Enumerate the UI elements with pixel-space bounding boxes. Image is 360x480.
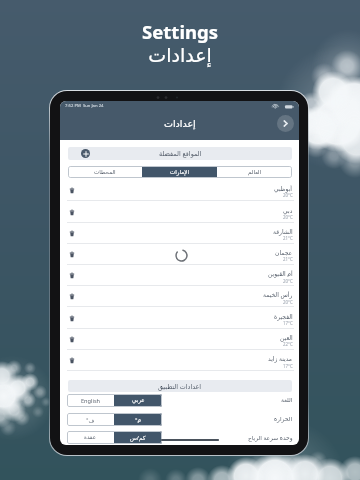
button[interactable]: عربي (114, 394, 162, 407)
button[interactable]: Delete الشارقة (65, 223, 78, 244)
staticText: اللغة (281, 397, 293, 404)
button[interactable]: English (67, 394, 114, 407)
staticText: أبوظبي (274, 185, 293, 192)
button[interactable]: Delete أبوظبي (60, 180, 299, 201)
staticText: الحرارة (274, 416, 293, 423)
staticText: English (81, 397, 101, 405)
staticText: 20°C (283, 299, 293, 305)
staticText: رأس الخيمة (263, 291, 293, 299)
staticText: 17°C (283, 320, 293, 326)
staticText: 21°C (283, 256, 293, 262)
button[interactable]: Next (277, 115, 294, 132)
staticText: الفجيرة (274, 313, 293, 320)
button[interactable]: عقدة (67, 431, 114, 444)
button[interactable]: Delete رأس الخيمة (60, 286, 299, 307)
button[interactable]: Delete أم القيوين (65, 265, 78, 286)
staticText: العالم (248, 169, 262, 176)
staticText: عقدة (84, 434, 97, 441)
button[interactable]: Delete دبي (65, 202, 78, 223)
staticText: Settings (142, 19, 218, 44)
staticText: الإمارات (170, 169, 189, 176)
staticText: °ف (86, 416, 95, 424)
button[interactable]: الإمارات (142, 166, 217, 178)
button[interactable]: Delete مدينة زايد (65, 350, 78, 371)
staticText: 22°C (283, 341, 293, 347)
staticText: مدينة زايد (268, 355, 293, 363)
button[interactable]: Delete أم القيوين (60, 265, 299, 286)
button[interactable]: Delete مدينة زايد (60, 350, 299, 371)
staticText: 7:52 PM Sun Jan 24 (65, 103, 104, 109)
button[interactable]: Delete رأس الخيمة (65, 286, 78, 307)
staticText: 20°C (283, 192, 293, 198)
button[interactable]: Delete العين (65, 329, 78, 350)
staticText: المحطات (94, 169, 116, 176)
button[interactable]: Delete الفجيرة (60, 308, 299, 329)
button[interactable]: °م (114, 413, 162, 426)
button[interactable]: Delete دبي (60, 202, 299, 223)
staticText: إعدادات (164, 118, 196, 129)
staticText: المواقع المفضلة (159, 149, 202, 158)
staticText: وحدة سرعة الرياح (248, 434, 293, 442)
button[interactable]: Delete عجمان (60, 244, 299, 265)
button[interactable]: العالم (217, 166, 292, 178)
staticText: العين (280, 334, 293, 341)
staticText: عجمان (275, 249, 293, 256)
staticText: عربي (132, 397, 145, 404)
staticText: 20°C (283, 214, 293, 220)
button[interactable]: Add location (81, 149, 90, 158)
staticText: 17°C (283, 363, 293, 369)
staticText: الشارقة (273, 228, 293, 235)
button[interactable]: Delete العين (60, 329, 299, 350)
button[interactable]: °ف (67, 413, 114, 426)
staticText: دبي (283, 207, 293, 214)
button[interactable]: Delete أبوظبي (65, 180, 78, 201)
staticText: °م (135, 416, 141, 424)
staticText: إعدادات (148, 44, 212, 66)
staticText: كم/س (130, 434, 146, 442)
staticText: اعدادات التطبيق (158, 382, 202, 391)
button[interactable]: Delete الشارقة (60, 223, 299, 244)
staticText: 21°C (283, 235, 293, 241)
button[interactable]: كم/س (114, 431, 162, 444)
button[interactable]: المحطات (68, 166, 142, 178)
staticText: أم القيوين (268, 270, 293, 278)
button[interactable]: Delete عجمان (65, 244, 78, 265)
staticText: 20°C (283, 278, 293, 284)
button[interactable]: Delete الفجيرة (65, 308, 78, 329)
